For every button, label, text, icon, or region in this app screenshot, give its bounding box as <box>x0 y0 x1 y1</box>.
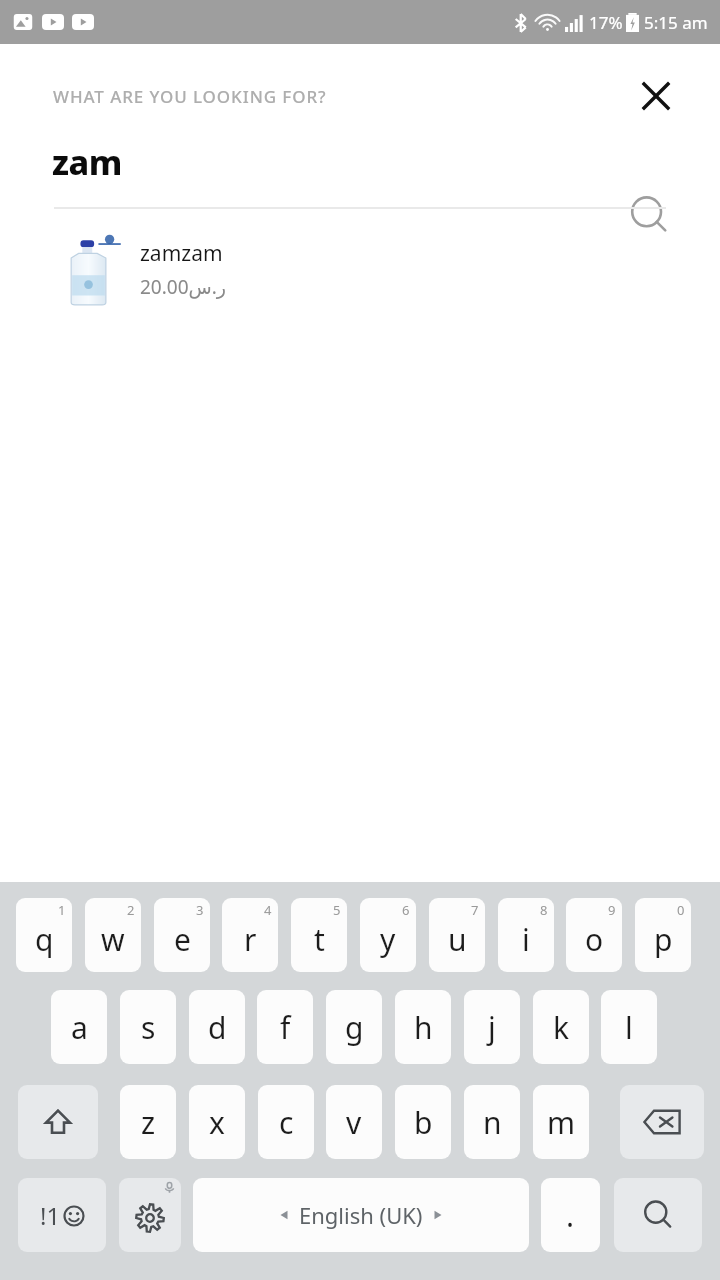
staticText: r <box>244 919 257 960</box>
staticText: g <box>345 1007 364 1048</box>
button[interactable]: f <box>257 990 313 1064</box>
button[interactable]: 2 <box>85 898 141 972</box>
staticText: 6 <box>402 901 410 919</box>
staticText: o <box>585 919 604 960</box>
staticText: 9 <box>608 901 616 919</box>
staticText: d <box>208 1007 227 1048</box>
button[interactable]: d <box>189 990 245 1064</box>
button[interactable]: zamzam <box>0 214 720 324</box>
staticText: 3 <box>196 901 204 919</box>
button[interactable]: Symbols and emoji <box>18 1178 106 1252</box>
staticText: English (UK) <box>299 1200 423 1230</box>
staticText: 2 <box>127 901 135 919</box>
button[interactable]: g <box>326 990 382 1064</box>
button[interactable]: s <box>120 990 176 1064</box>
button[interactable]: l <box>601 990 657 1064</box>
staticText: s <box>141 1007 156 1048</box>
button[interactable]: Close <box>628 68 684 124</box>
staticText: 0 <box>677 901 685 919</box>
button[interactable]: c <box>258 1085 314 1159</box>
button[interactable]: j <box>464 990 520 1064</box>
staticText: 5:15 am <box>644 11 708 34</box>
staticText: y <box>380 919 396 960</box>
staticText: . <box>566 1195 575 1236</box>
button[interactable]: b <box>395 1085 451 1159</box>
staticText: x <box>209 1102 225 1143</box>
staticText: p <box>654 919 673 960</box>
button[interactable]: h <box>395 990 451 1064</box>
button[interactable]: 5 <box>291 898 347 972</box>
staticText: j <box>488 1007 496 1048</box>
staticText: WHAT ARE YOU LOOKING FOR? <box>53 85 327 108</box>
button[interactable]: 7 <box>429 898 485 972</box>
staticText: zam <box>52 139 122 185</box>
button[interactable]: 3 <box>154 898 210 972</box>
button[interactable]: 0 <box>635 898 691 972</box>
staticText: h <box>414 1007 433 1048</box>
staticText: 7 <box>471 901 479 919</box>
button[interactable]: z <box>120 1085 176 1159</box>
button[interactable]: Backspace <box>620 1085 704 1159</box>
button[interactable]: m <box>533 1085 589 1159</box>
staticText: 4 <box>264 901 272 919</box>
button[interactable]: . <box>541 1178 600 1252</box>
button[interactable]: 9 <box>566 898 622 972</box>
button[interactable]: Search <box>614 1178 702 1252</box>
staticText: q <box>35 919 54 960</box>
staticText: l <box>625 1007 633 1048</box>
button[interactable]: v <box>326 1085 382 1159</box>
button[interactable]: k <box>533 990 589 1064</box>
staticText: f <box>280 1007 291 1048</box>
staticText: b <box>414 1102 433 1143</box>
staticText: m <box>547 1102 576 1143</box>
button[interactable]: 1 <box>16 898 72 972</box>
staticText: !1 <box>40 1199 61 1232</box>
button[interactable]: Search <box>620 186 678 244</box>
staticText: t <box>314 919 325 960</box>
button[interactable]: x <box>189 1085 245 1159</box>
button[interactable]: a <box>51 990 107 1064</box>
staticText: c <box>279 1102 294 1143</box>
staticText: e <box>174 919 191 960</box>
staticText: 1 <box>58 901 66 919</box>
button[interactable]: Shift <box>18 1085 98 1159</box>
staticText: v <box>346 1102 362 1143</box>
staticText: i <box>522 919 530 960</box>
staticText: a <box>71 1007 88 1048</box>
staticText: w <box>101 919 125 960</box>
button[interactable]: 4 <box>222 898 278 972</box>
staticText: n <box>483 1102 502 1143</box>
staticText: z <box>141 1102 156 1143</box>
staticText: zamzam <box>140 239 223 268</box>
staticText: ر.س20.00 <box>140 274 227 300</box>
button[interactable]: Space, English (UK) <box>193 1178 529 1252</box>
staticText: 8 <box>540 901 548 919</box>
staticText: 17% <box>589 11 623 34</box>
staticText: u <box>448 919 467 960</box>
staticText: 5 <box>333 901 341 919</box>
button[interactable]: Keyboard settings <box>119 1178 181 1252</box>
staticText: k <box>553 1007 570 1048</box>
button[interactable]: n <box>464 1085 520 1159</box>
button[interactable]: 8 <box>498 898 554 972</box>
button[interactable]: 6 <box>360 898 416 972</box>
